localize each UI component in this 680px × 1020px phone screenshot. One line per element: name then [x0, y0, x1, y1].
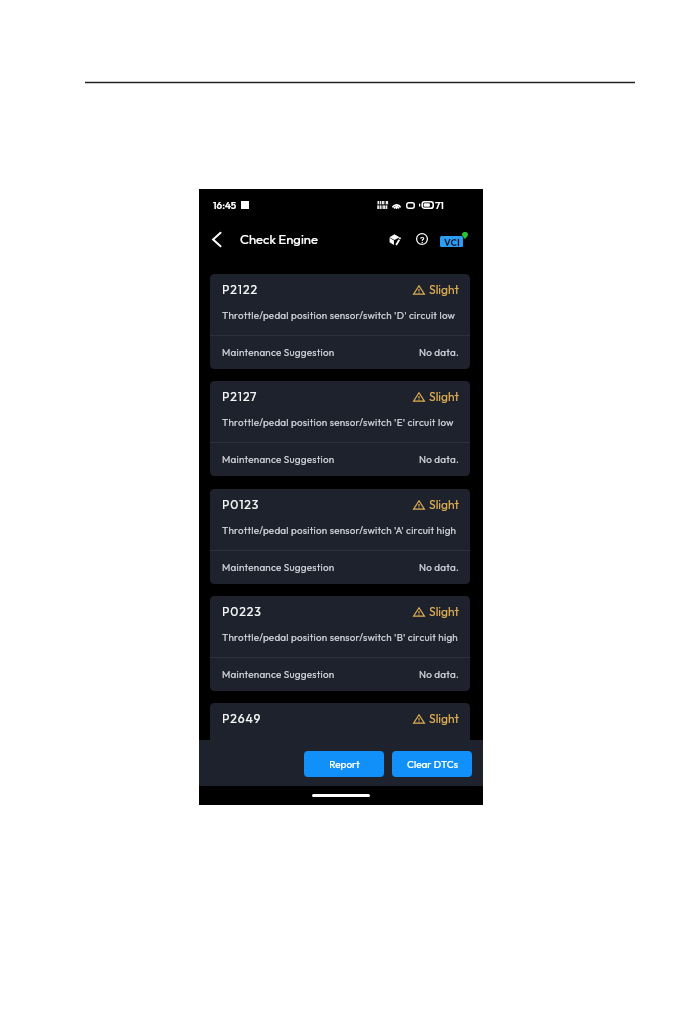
staticText: Slight: [429, 389, 459, 404]
staticText: No data.: [419, 346, 460, 358]
staticText: Slight: [429, 604, 459, 619]
staticText: Clear DTCs: [407, 758, 458, 771]
button[interactable]: Back: [203, 226, 229, 252]
staticText: Check Engine: [240, 231, 318, 247]
staticText: Throttle/pedal position sensor/switch 'E…: [222, 416, 454, 428]
button[interactable]: P0123: [210, 489, 470, 584]
button[interactable]: P2122: [210, 274, 470, 369]
staticText: Slight: [429, 282, 459, 297]
staticText: Maintenance Suggestion: [222, 453, 335, 465]
staticText: Maintenance Suggestion: [222, 561, 335, 573]
staticText: 16:45: [213, 199, 237, 212]
staticText: P2127: [222, 389, 258, 404]
staticText: Slight: [429, 711, 459, 726]
staticText: P0123: [222, 497, 260, 512]
button[interactable]: VCI connected: [440, 228, 468, 250]
staticText: Slight: [429, 497, 459, 512]
staticText: 71: [435, 199, 444, 212]
staticText: P2122: [222, 282, 258, 297]
button[interactable]: Clear DTCs: [392, 751, 472, 777]
staticText: ?: [420, 234, 425, 245]
staticText: P0223: [222, 604, 262, 619]
staticText: P2649: [222, 711, 262, 726]
staticText: Maintenance Suggestion: [222, 668, 335, 680]
staticText: Throttle/pedal position sensor/switch 'A…: [222, 524, 457, 536]
button[interactable]: Report: [304, 751, 384, 777]
staticText: VCI: [444, 236, 460, 247]
button[interactable]: Help: [411, 228, 433, 250]
button[interactable]: P2649: [210, 703, 470, 740]
staticText: Report: [329, 758, 360, 771]
staticText: No data.: [419, 668, 460, 680]
button[interactable]: P0223: [210, 596, 470, 691]
staticText: Maintenance Suggestion: [222, 346, 335, 358]
button[interactable]: Vehicle info: [383, 228, 405, 250]
staticText: Throttle/pedal position sensor/switch 'D…: [222, 309, 456, 321]
staticText: Throttle/pedal position sensor/switch 'B…: [222, 631, 458, 643]
staticText: No data.: [419, 561, 460, 573]
staticText: No data.: [419, 453, 460, 465]
button[interactable]: P2127: [210, 381, 470, 476]
